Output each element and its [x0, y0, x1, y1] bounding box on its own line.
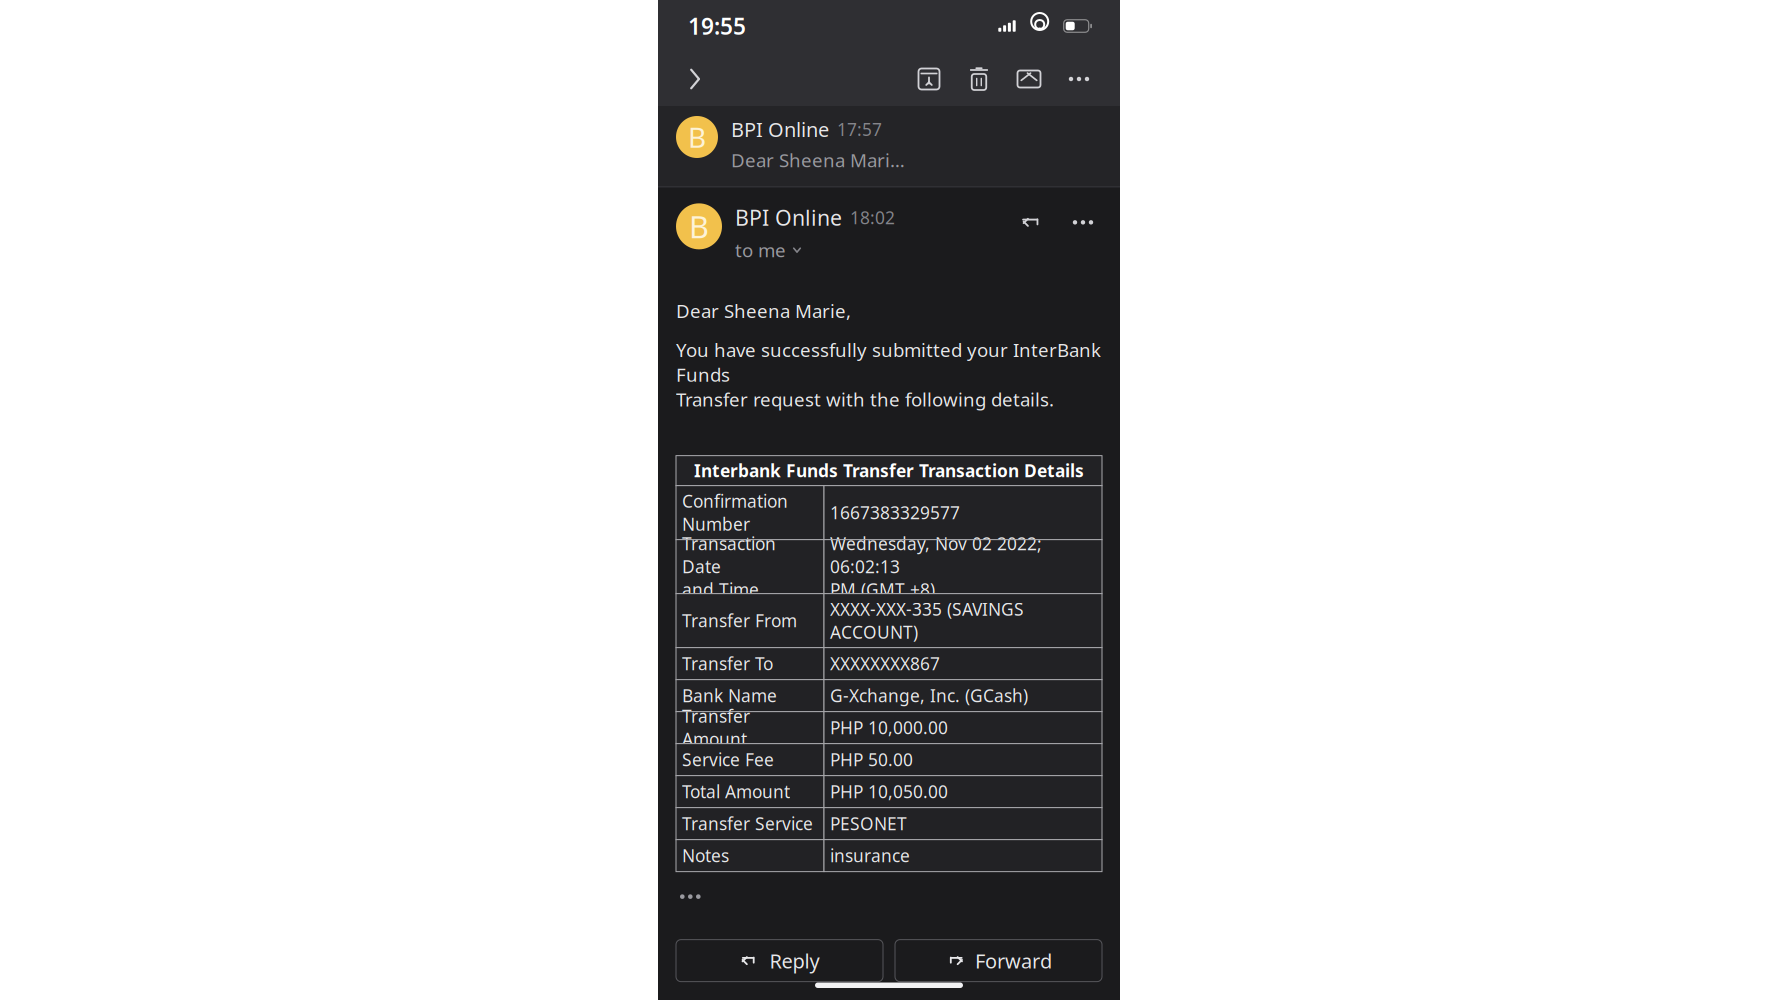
- staticText: PESONET: [830, 812, 907, 835]
- staticText: Transfer From: [682, 609, 797, 632]
- button[interactable]: Mark as unread: [1004, 56, 1054, 102]
- staticText: 1667383329577: [830, 501, 960, 524]
- staticText: XXXX-XXX-335 (SAVINGS ACCOUNT): [830, 598, 1024, 644]
- staticText: Interbank Funds Transfer Transaction Det…: [694, 459, 1084, 482]
- staticText: Transfer Service: [682, 812, 813, 835]
- button[interactable]: to me: [735, 238, 803, 262]
- button[interactable]: B: [658, 106, 1120, 186]
- button[interactable]: Reply: [676, 940, 883, 982]
- staticText: PHP 50.00: [830, 748, 913, 771]
- button[interactable]: Show trimmed content: [672, 884, 709, 910]
- staticText: B: [689, 206, 709, 247]
- staticText: Total Amount: [682, 780, 790, 803]
- staticText: BPI Online: [731, 116, 829, 143]
- staticText: Notes: [682, 844, 729, 867]
- button[interactable]: Delete: [954, 56, 1004, 102]
- staticText: Transfer To: [682, 652, 773, 675]
- staticText: XXXXXXXX867: [830, 652, 940, 675]
- staticText: Forward: [975, 947, 1052, 974]
- staticText: BPI Online: [735, 203, 842, 232]
- staticText: 19:55: [688, 11, 746, 41]
- staticText: Transaction Date and Time: [682, 532, 776, 601]
- staticText: Dear Sheena Marie, You have successfully…: [731, 148, 910, 172]
- button[interactable]: Back: [672, 56, 718, 102]
- staticText: Confirmation Number: [682, 490, 788, 536]
- staticText: Wednesday, Nov 02 2022; 06:02:13 PM (GMT…: [830, 532, 1042, 601]
- staticText: G-Xchange, Inc. (GCash): [830, 684, 1028, 707]
- staticText: to me: [735, 238, 786, 262]
- staticText: Transfer Amount: [682, 705, 750, 751]
- staticText: 18:02: [850, 206, 895, 229]
- button[interactable]: Reply: [1013, 203, 1051, 241]
- button[interactable]: More options: [1064, 203, 1102, 241]
- staticText: Service Fee: [682, 748, 774, 771]
- staticText: insurance: [830, 844, 910, 867]
- staticText: Dear Sheena Marie,: [676, 298, 851, 323]
- staticText: PHP 10,000.00: [830, 716, 948, 739]
- button[interactable]: Forward: [895, 940, 1102, 982]
- staticText: B: [688, 118, 706, 156]
- staticText: 17:57: [837, 118, 882, 141]
- staticText: You have successfully submitted your Int…: [676, 337, 1101, 412]
- button[interactable]: More options: [1054, 56, 1104, 102]
- staticText: PHP 10,050.00: [830, 780, 948, 803]
- staticText: Bank Name: [682, 684, 777, 707]
- staticText: Reply: [769, 947, 819, 974]
- button[interactable]: Archive: [904, 56, 954, 102]
